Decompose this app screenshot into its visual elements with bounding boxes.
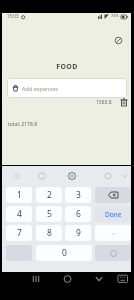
staticText: 5	[47, 208, 52, 220]
button[interactable]: 7	[6, 225, 32, 241]
button[interactable]: 5	[36, 206, 62, 222]
button[interactable]: 6	[65, 206, 91, 222]
button[interactable]	[115, 272, 131, 286]
staticText: 8	[47, 227, 52, 239]
staticText: 6	[76, 208, 81, 220]
button[interactable]: 0	[36, 245, 92, 261]
button[interactable]	[95, 187, 131, 203]
button[interactable]: .-	[95, 225, 131, 241]
staticText: Done	[105, 210, 122, 219]
button[interactable]	[119, 97, 129, 107]
staticText: 1583.8	[96, 99, 112, 106]
staticText: 3	[76, 189, 81, 201]
staticText: 9	[76, 227, 81, 239]
button[interactable]: 1	[6, 187, 32, 203]
staticText: 15:03	[7, 13, 19, 19]
button[interactable]	[91, 272, 107, 286]
staticText: 2	[47, 189, 52, 201]
button[interactable]	[28, 272, 44, 286]
staticText: 1	[17, 189, 22, 201]
staticText: Add expenses	[22, 85, 58, 92]
button[interactable]: Add expenses	[7, 78, 127, 98]
button[interactable]: 4	[6, 206, 32, 222]
button[interactable]	[59, 272, 75, 286]
button[interactable]: 2	[36, 187, 62, 203]
staticText: 74%	[111, 13, 119, 18]
button[interactable]	[112, 34, 125, 47]
button[interactable]	[95, 245, 131, 261]
button[interactable]: 3	[65, 187, 91, 203]
staticText: 7	[17, 227, 22, 239]
staticText: 4	[17, 208, 22, 220]
button[interactable]: 9	[65, 225, 91, 241]
button[interactable]: Done	[95, 206, 131, 222]
button[interactable]: 8	[36, 225, 62, 241]
staticText: .-	[112, 230, 115, 237]
staticText: 0	[62, 247, 67, 259]
staticText: FOOD	[0, 62, 134, 72]
staticText: total: 2178.8	[8, 121, 38, 128]
